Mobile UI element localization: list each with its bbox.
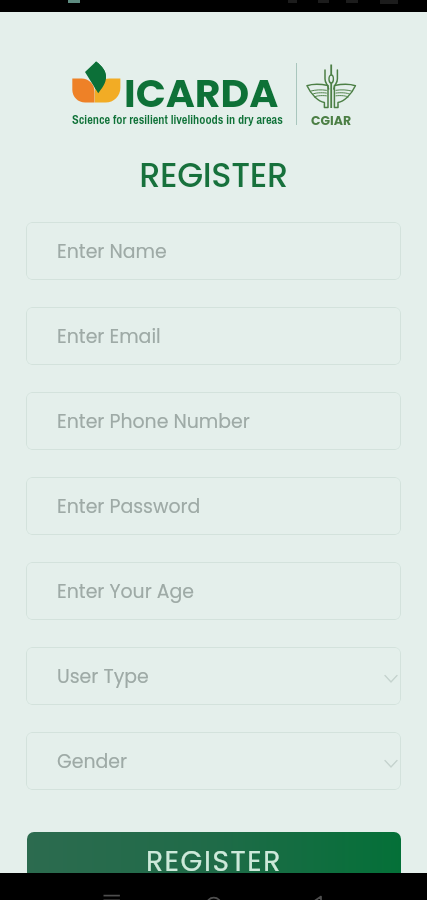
- button[interactable]: REGISTER: [27, 832, 401, 890]
- staticText: REGISTER: [0, 152, 427, 199]
- button[interactable]: Gender: [26, 732, 401, 790]
- button[interactable]: Enter Email: [26, 307, 401, 365]
- staticText: Enter Name: [57, 238, 167, 264]
- staticText: User Type: [57, 663, 149, 689]
- staticText: Gender: [57, 748, 128, 774]
- staticText: REGISTER: [146, 842, 282, 881]
- button[interactable]: Enter Your Age: [26, 562, 401, 620]
- staticText: Science for resilient livelihoods in dry…: [72, 111, 283, 128]
- staticText: Enter Email: [57, 323, 161, 349]
- button[interactable]: Enter Password: [26, 477, 401, 535]
- button[interactable]: Enter Name: [26, 222, 401, 280]
- staticText: Enter Phone Number: [57, 408, 250, 434]
- staticText: CGIAR: [311, 112, 352, 129]
- staticText: Enter Your Age: [57, 578, 194, 604]
- button[interactable]: Enter Phone Number: [26, 392, 401, 450]
- button[interactable]: User Type: [26, 647, 401, 705]
- staticText: Enter Password: [57, 493, 201, 519]
- staticText: ICARDA: [124, 66, 279, 121]
